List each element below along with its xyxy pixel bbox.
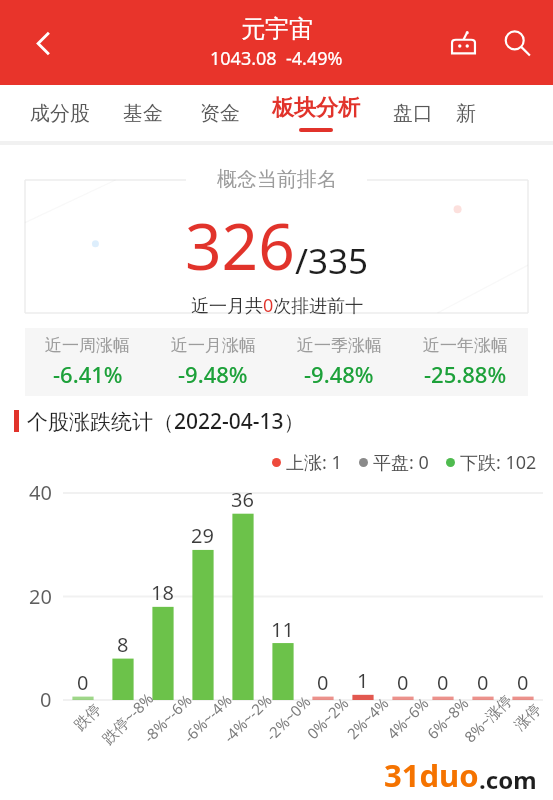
staticText: 盘口 <box>393 101 433 126</box>
staticText: 近一月涨幅 <box>171 335 256 356</box>
staticText: 跌停~-8% <box>97 688 157 748</box>
staticText: 成分股 <box>30 101 90 126</box>
staticText: 基金 <box>123 101 163 126</box>
staticText: -9.48% <box>304 359 374 389</box>
staticText: 概念当前排名 <box>217 167 337 192</box>
button[interactable]: 近一周涨幅 <box>25 328 150 396</box>
staticText: 4%~6% <box>382 693 433 743</box>
staticText: 近一周涨幅 <box>45 335 130 356</box>
staticText: 326 <box>185 202 295 289</box>
button[interactable]: 平盘: 0 <box>359 450 429 475</box>
staticText: 近一年涨幅 <box>423 335 508 356</box>
staticText: 资金 <box>200 101 240 126</box>
staticText: /335 <box>295 237 369 285</box>
button[interactable]: 新 <box>452 85 480 141</box>
staticText: 18 <box>151 579 174 606</box>
staticText: 上涨: 1 <box>286 450 342 475</box>
staticText: .com <box>479 763 537 796</box>
button[interactable]: Back <box>20 20 66 66</box>
staticText: 板块分析 <box>272 94 360 122</box>
staticText: 6%~8% <box>422 693 473 743</box>
staticText: 0 <box>77 669 89 696</box>
staticText: 涨停 <box>511 700 545 735</box>
staticText: 新 <box>456 101 476 126</box>
button[interactable]: Assistant <box>439 19 487 67</box>
button[interactable]: 基金 <box>104 85 182 141</box>
button[interactable]: 盘口 <box>374 85 452 141</box>
staticText: 0 <box>397 669 409 696</box>
button[interactable]: 板块分析 <box>258 85 374 141</box>
button[interactable]: 下跌: 102 <box>446 450 537 475</box>
staticText: 2%~4% <box>342 693 393 743</box>
staticText: 个股涨跌统计（2022-04-13） <box>27 407 305 436</box>
staticText: -25.88% <box>424 359 507 389</box>
staticText: 36 <box>231 486 254 513</box>
staticText: -4%~-2% <box>219 689 276 747</box>
staticText: 0 <box>40 686 52 713</box>
staticText: 近一季涨幅 <box>297 335 382 356</box>
button[interactable]: 成分股 <box>16 85 104 141</box>
button[interactable]: 近一季涨幅 <box>276 328 402 396</box>
staticText: 0%~2% <box>302 693 353 743</box>
button[interactable]: 资金 <box>182 85 258 141</box>
staticText: 近一月共0次排进前十 <box>191 293 364 318</box>
button[interactable]: 上涨: 1 <box>272 450 342 475</box>
staticText: 0 <box>317 669 329 696</box>
staticText: 31duo <box>384 754 479 796</box>
staticText: 0 <box>517 669 529 696</box>
button[interactable]: 近一月涨幅 <box>150 328 276 396</box>
staticText: 0 <box>437 669 449 696</box>
staticText: 跌停 <box>71 700 105 735</box>
staticText: 20 <box>29 583 52 610</box>
staticText: 29 <box>191 522 214 549</box>
staticText: -6.41% <box>53 359 123 389</box>
staticText: 下跌: 102 <box>460 450 537 475</box>
staticText: -2%~0% <box>261 691 315 745</box>
button[interactable]: Search <box>493 19 541 67</box>
staticText: -8%~-6% <box>139 689 196 747</box>
staticText: 1043.08 -4.49% <box>210 46 343 71</box>
staticText: 平盘: 0 <box>373 450 429 475</box>
staticText: -6%~-4% <box>179 689 236 747</box>
staticText: 11 <box>271 616 294 643</box>
staticText: 0 <box>477 669 489 696</box>
staticText: 1 <box>357 667 369 694</box>
staticText: -9.48% <box>178 359 248 389</box>
staticText: 元宇宙 <box>241 14 313 44</box>
staticText: 40 <box>29 479 52 506</box>
staticText: 8 <box>117 631 129 658</box>
button[interactable]: 近一年涨幅 <box>402 328 528 396</box>
staticText: 8%~涨停 <box>460 690 516 746</box>
